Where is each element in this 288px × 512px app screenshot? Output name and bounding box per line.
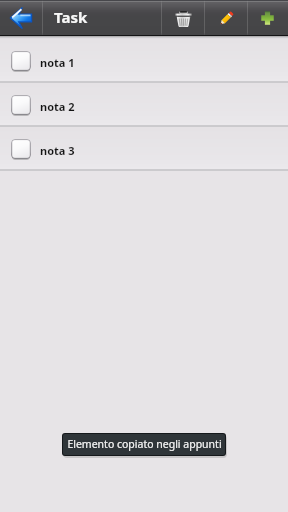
staticText: nota 3 <box>40 143 75 158</box>
button[interactable]: Delete <box>162 0 204 36</box>
staticText: nota 1 <box>40 55 75 70</box>
staticText: Elemento copiato negli appunti <box>67 437 222 451</box>
button[interactable]: Back <box>0 0 42 36</box>
button[interactable]: nota 3 <box>0 127 288 169</box>
staticText: Task <box>54 7 88 27</box>
button[interactable]: nota 1 <box>0 39 288 81</box>
staticText: nota 2 <box>40 99 75 114</box>
button[interactable]: nota 2 <box>0 83 288 125</box>
button[interactable]: Add <box>248 0 288 36</box>
button[interactable]: Edit <box>205 0 247 36</box>
